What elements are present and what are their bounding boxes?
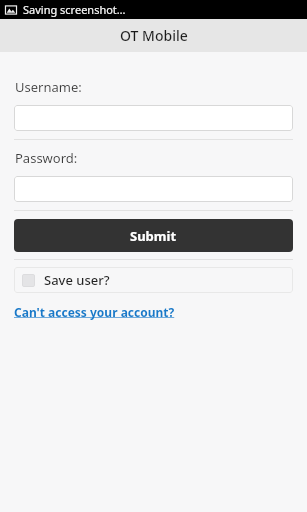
staticText: Saving screenshot… <box>23 2 126 17</box>
staticText: Submit <box>130 227 177 245</box>
button[interactable] <box>14 105 293 131</box>
staticText: Can't access your account? <box>14 304 175 320</box>
staticText: Username: <box>15 78 82 96</box>
button[interactable]: Can't access your account? <box>14 304 175 320</box>
other: Screenshot saved <box>5 4 17 16</box>
button[interactable]: Save user? <box>14 267 293 293</box>
button[interactable]: Submit <box>14 219 293 252</box>
button[interactable] <box>14 176 293 202</box>
staticText: Save user? <box>44 271 110 289</box>
staticText: Password: <box>15 149 78 167</box>
staticText: OT Mobile <box>120 26 188 45</box>
